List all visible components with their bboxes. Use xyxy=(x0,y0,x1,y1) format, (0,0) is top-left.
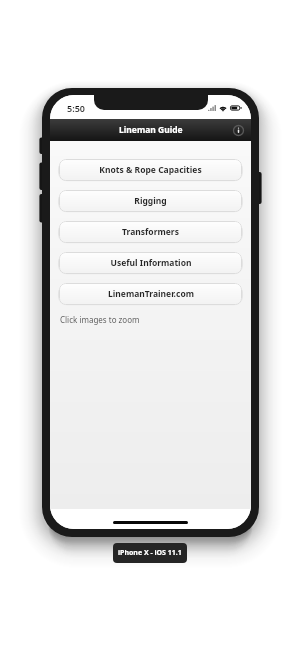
button[interactable]: Useful Information xyxy=(59,252,242,274)
button[interactable]: Transformers xyxy=(59,221,242,243)
button[interactable]: Info xyxy=(232,124,245,137)
staticText: Knots & Rope Capacities xyxy=(99,164,202,176)
staticText: iPhone X - iOS 11.1 xyxy=(118,548,182,558)
button[interactable]: Rigging xyxy=(59,190,242,212)
staticText: Useful Information xyxy=(110,257,192,269)
staticText: Lineman Guide xyxy=(119,124,183,136)
staticText: LinemanTrainer.com xyxy=(108,288,194,300)
staticText: 5:50 xyxy=(67,102,85,114)
staticText: Rigging xyxy=(134,195,167,207)
staticText: Click images to zoom xyxy=(60,314,140,325)
button[interactable]: LinemanTrainer.com xyxy=(59,283,242,305)
button[interactable]: Knots & Rope Capacities xyxy=(59,159,242,181)
staticText: Transformers xyxy=(122,226,179,238)
